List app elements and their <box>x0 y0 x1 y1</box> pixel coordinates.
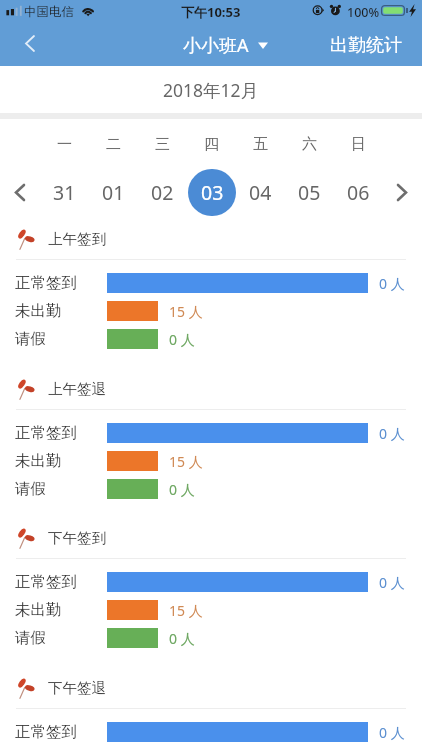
staticText: 04 <box>249 179 272 206</box>
staticText: 0 人 <box>379 424 405 443</box>
button[interactable]: 04 <box>236 169 285 216</box>
staticText: 上午签退 <box>48 380 106 398</box>
button[interactable]: 02 <box>138 169 187 216</box>
staticText: 四 <box>204 135 219 154</box>
staticText: 15 人 <box>169 302 203 321</box>
staticText: 03 <box>201 179 224 206</box>
staticText: 未出勤 <box>15 301 62 321</box>
button[interactable]: 01 <box>89 169 138 216</box>
staticText: 日 <box>351 135 366 154</box>
staticText: 正常签到 <box>15 572 77 592</box>
staticText: 02 <box>151 179 174 206</box>
staticText: 2018年12月 <box>163 78 259 102</box>
staticText: 正常签到 <box>15 273 77 293</box>
staticText: 01 <box>102 179 125 206</box>
staticText: 0 人 <box>169 629 195 648</box>
staticText: 未出勤 <box>15 451 62 471</box>
staticText: 小小班A <box>183 33 249 58</box>
staticText: 0 人 <box>379 274 405 293</box>
button[interactable]: Next week <box>382 169 422 216</box>
button[interactable]: Back <box>0 24 53 66</box>
staticText: 六 <box>302 135 317 154</box>
staticText: 正常签到 <box>15 423 77 443</box>
staticText: 出勤统计 <box>330 34 402 57</box>
button[interactable]: 31 <box>39 169 89 216</box>
button[interactable]: Previous week <box>0 169 40 216</box>
staticText: 06 <box>347 179 370 206</box>
staticText: 请假 <box>15 329 46 349</box>
staticText: 一 <box>57 135 72 154</box>
staticText: 100% <box>347 4 380 21</box>
staticText: 0 人 <box>379 573 405 592</box>
staticText: 0 人 <box>379 723 405 742</box>
staticText: 未出勤 <box>15 600 62 620</box>
staticText: 请假 <box>15 628 46 648</box>
staticText: 31 <box>53 179 76 206</box>
staticText: 正常签到 <box>15 722 77 742</box>
button[interactable]: 出勤统计 <box>0 24 422 66</box>
staticText: 15 人 <box>169 601 203 620</box>
staticText: 下午签到 <box>48 529 106 547</box>
staticText: 上午签到 <box>48 230 106 248</box>
staticText: 0 人 <box>169 330 195 349</box>
button[interactable]: 05 <box>285 169 334 216</box>
staticText: 15 人 <box>169 452 203 471</box>
staticText: 三 <box>155 135 170 154</box>
staticText: 五 <box>253 135 268 154</box>
button[interactable]: 03 <box>187 169 236 216</box>
staticText: 0 人 <box>169 480 195 499</box>
staticText: 请假 <box>15 479 46 499</box>
button[interactable]: 06 <box>334 169 383 216</box>
staticText: 下午10:53 <box>181 3 241 21</box>
staticText: 05 <box>298 179 321 206</box>
staticText: 中国电信 <box>24 4 74 20</box>
button[interactable]: 小小班A <box>177 27 274 64</box>
staticText: 二 <box>106 135 121 154</box>
staticText: 下午签退 <box>48 679 106 697</box>
